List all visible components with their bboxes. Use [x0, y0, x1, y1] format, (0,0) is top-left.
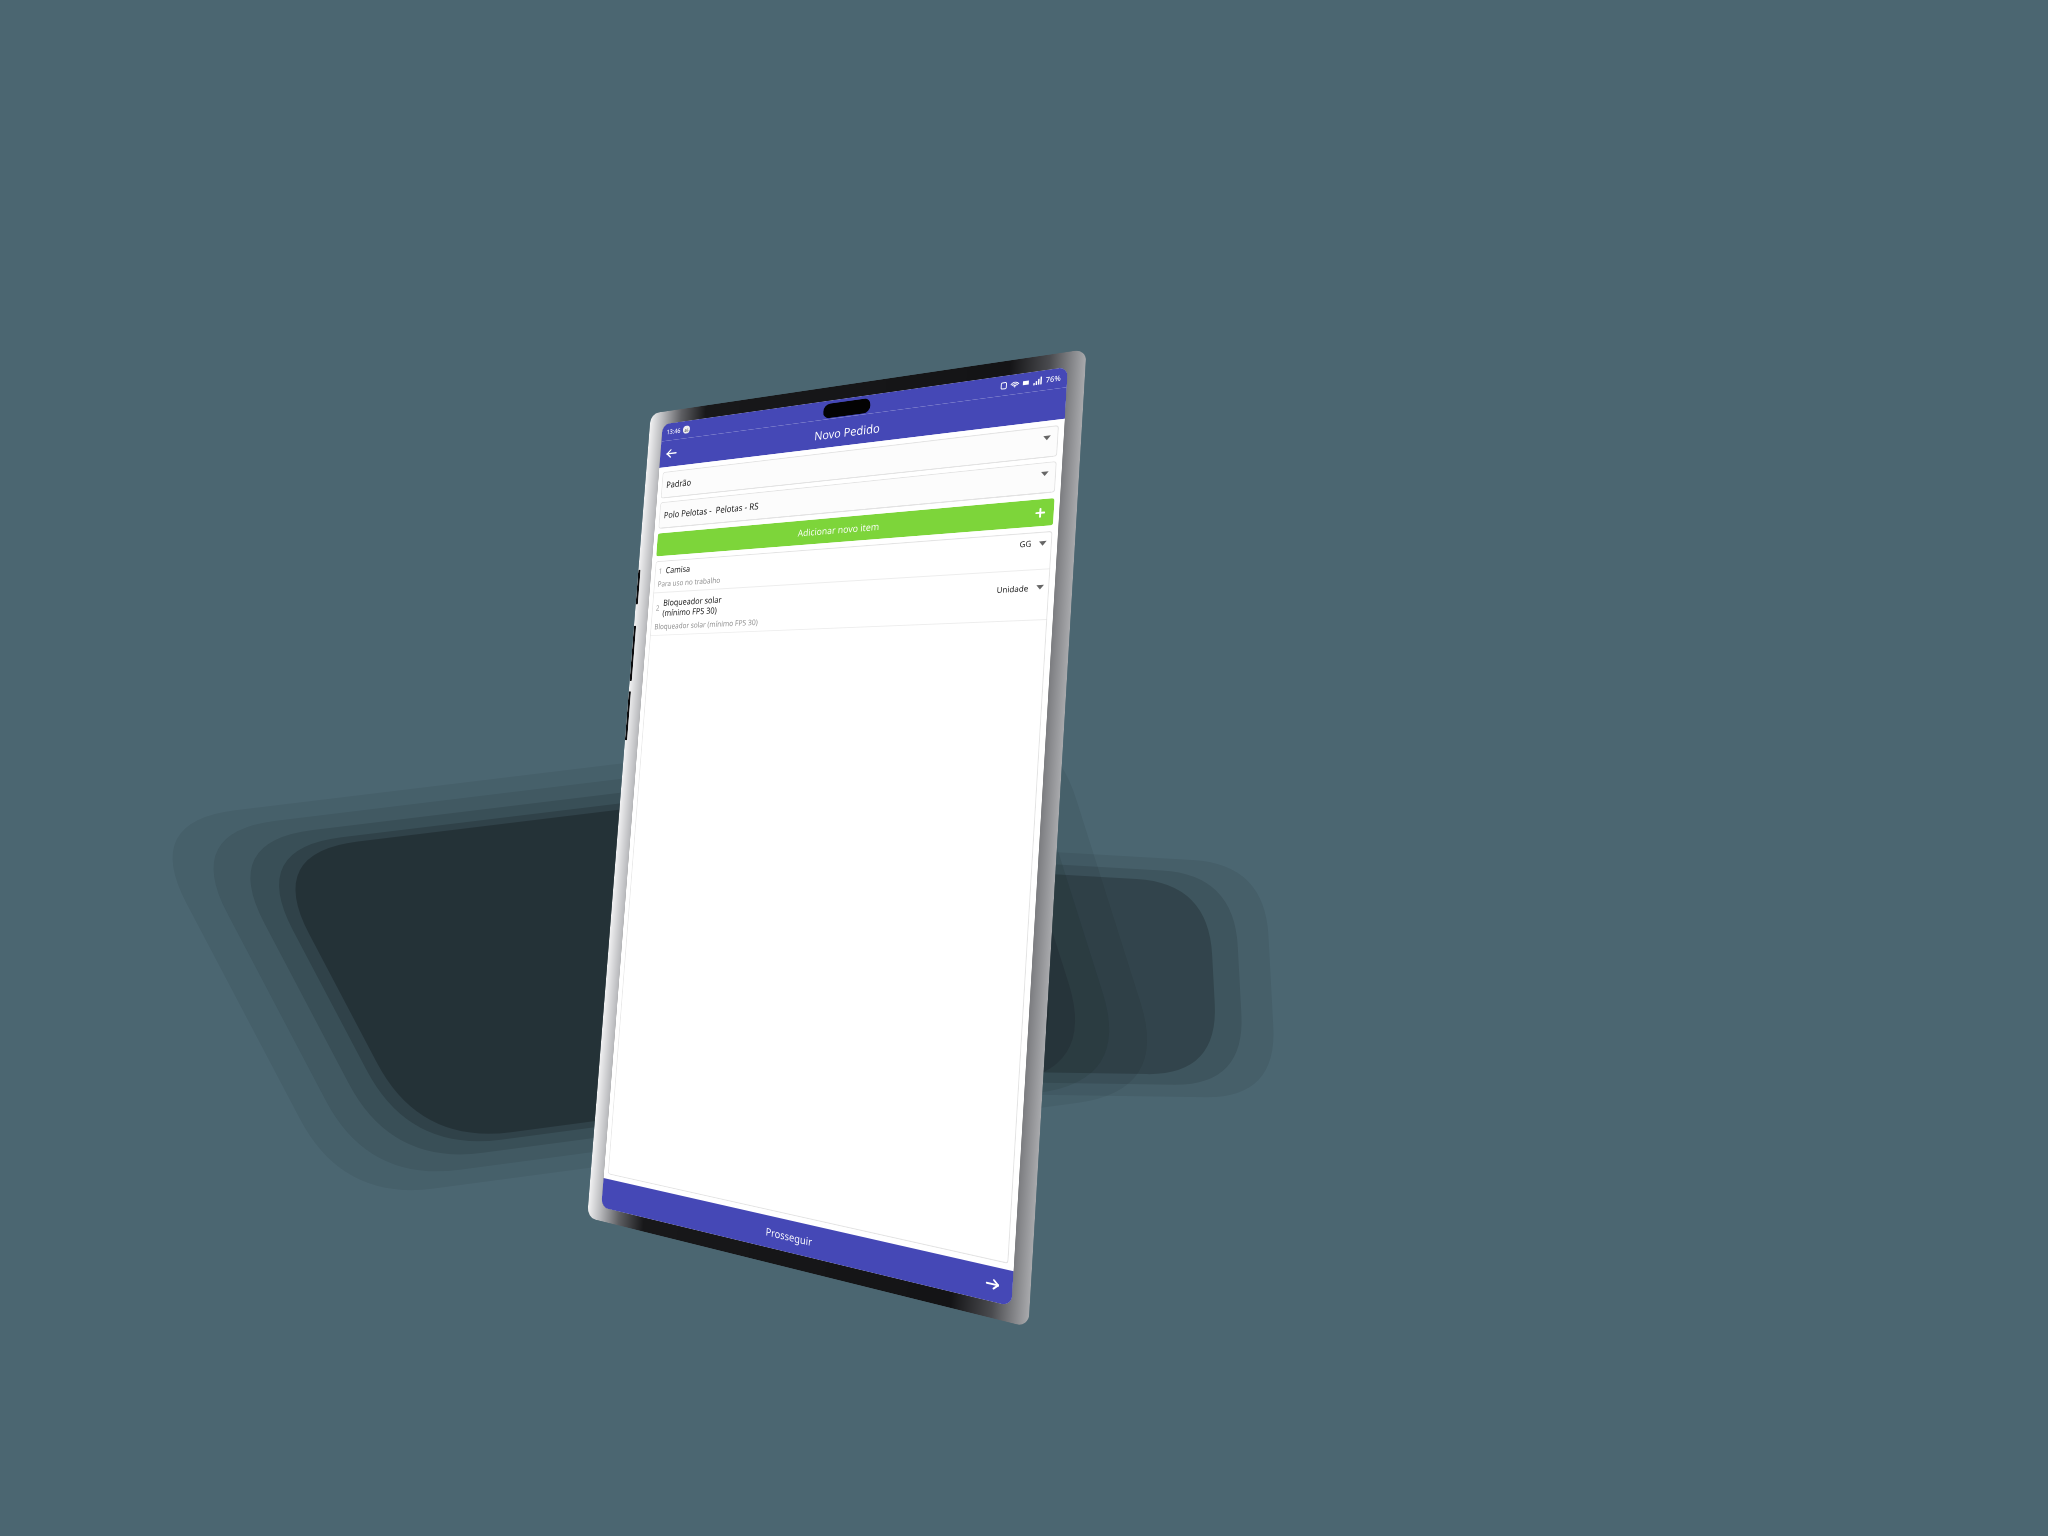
staticText: Prosseguir — [765, 1224, 813, 1249]
staticText: Bloqueador solar (mínimo FPS 30) — [654, 616, 759, 631]
button[interactable]: Prosseguir — [601, 1178, 1014, 1306]
staticText: 46 — [684, 427, 689, 433]
staticText: 76% — [1045, 373, 1061, 386]
staticText: Padrão — [666, 476, 692, 491]
staticText: 2 — [655, 602, 663, 613]
button[interactable]: Back — [663, 443, 680, 464]
staticText: GG — [1019, 538, 1032, 549]
staticText: Para uso no trabalho — [657, 574, 721, 589]
staticText: 1 — [658, 565, 666, 576]
staticText: Unidade — [996, 583, 1029, 595]
staticText: 13:46 — [666, 426, 681, 437]
button[interactable]: Adicionar novo item — [656, 498, 1055, 557]
staticText: Bloqueador solar (mínimo FPS 30) — [662, 577, 997, 618]
button[interactable]: 1 — [653, 531, 1053, 592]
staticText: Polo Pelotas - Pelotas - RS — [663, 500, 759, 521]
button[interactable]: Padrão — [661, 425, 1059, 499]
button[interactable]: 2 — [650, 569, 1050, 635]
staticText: Camisa — [665, 538, 1020, 575]
button[interactable]: Polo Pelotas - Pelotas - RS — [658, 461, 1057, 529]
staticText: Novo Pedido — [814, 419, 881, 443]
staticText: Adicionar novo item — [797, 520, 880, 540]
